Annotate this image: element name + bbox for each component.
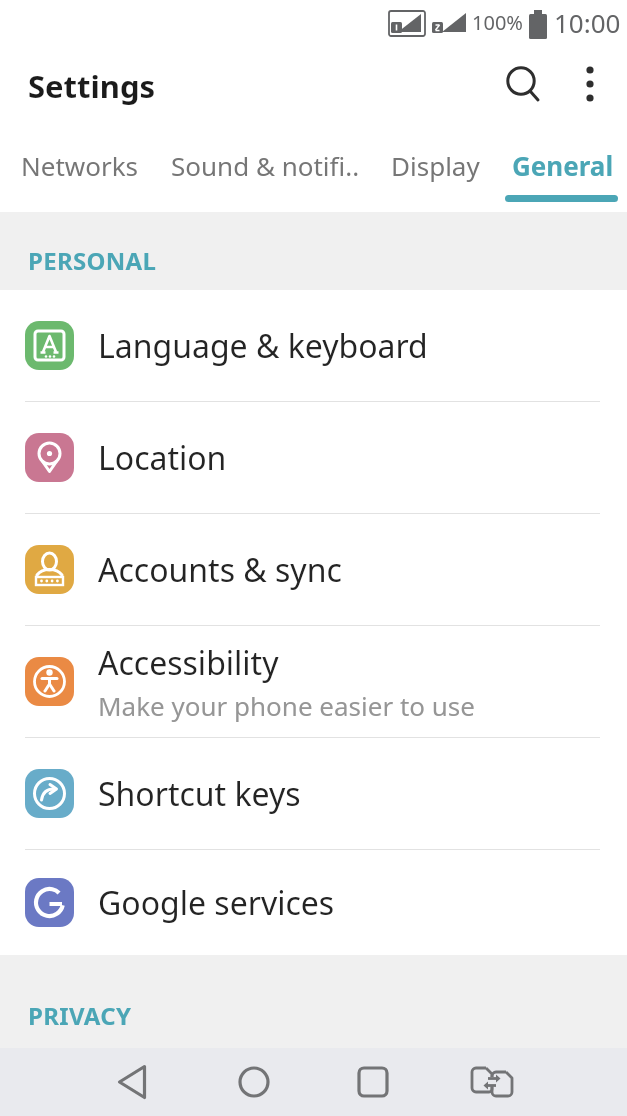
button[interactable]: Google services — [0, 850, 627, 955]
staticText: Make your phone easier to use — [98, 688, 475, 723]
button[interactable] — [194, 1048, 313, 1116]
button[interactable]: Shortcut keys — [0, 738, 627, 849]
button[interactable]: Display — [391, 148, 480, 183]
button[interactable]: Language & keyboard — [0, 290, 627, 401]
button[interactable]: Location — [0, 402, 627, 513]
button[interactable] — [313, 1048, 432, 1116]
staticText: PRIVACY — [28, 999, 132, 1032]
button[interactable] — [569, 63, 611, 105]
button[interactable]: Sound & notifi.. — [171, 148, 360, 183]
staticText: Shortcut keys — [98, 772, 301, 816]
staticText: Settings — [28, 65, 156, 107]
staticText: PERSONAL — [28, 244, 157, 277]
staticText: 10:00 — [554, 5, 621, 40]
button[interactable]: Networks — [21, 148, 139, 183]
staticText: Language & keyboard — [98, 324, 428, 368]
staticText: Accounts & sync — [98, 548, 342, 592]
button[interactable]: Accessibility — [0, 626, 627, 737]
staticText: Location — [98, 436, 227, 480]
button[interactable] — [74, 1048, 194, 1116]
button[interactable]: Accounts & sync — [0, 514, 627, 625]
button[interactable]: General — [512, 148, 614, 183]
staticText: Accessibility — [98, 641, 279, 685]
staticText: 100% — [472, 9, 523, 36]
staticText: Google services — [98, 881, 335, 925]
button[interactable] — [501, 62, 547, 108]
button[interactable] — [432, 1048, 551, 1116]
